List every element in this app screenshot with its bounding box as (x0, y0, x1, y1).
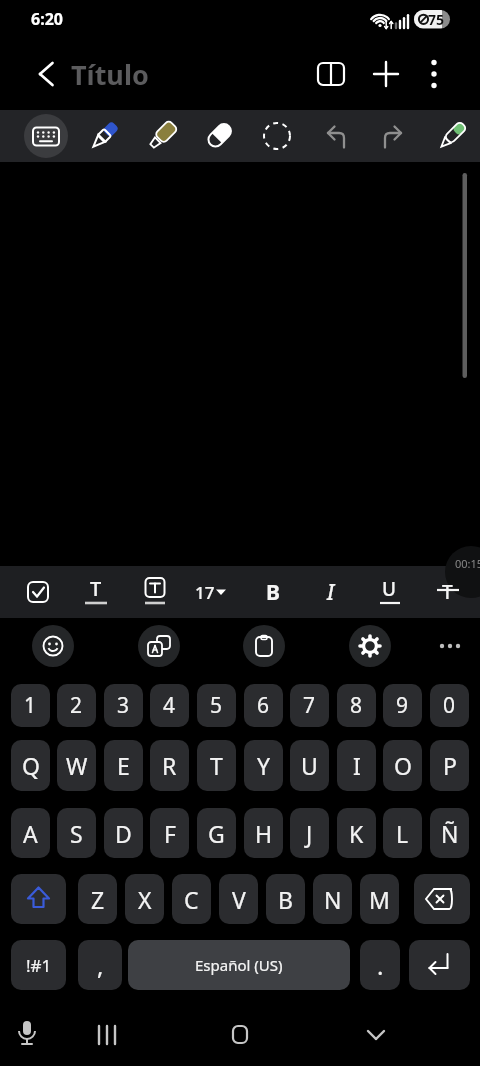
button[interactable]: , (78, 940, 122, 990)
button[interactable] (314, 114, 358, 158)
button[interactable]: 2 (57, 684, 96, 727)
button[interactable] (82, 114, 126, 158)
button[interactable] (409, 940, 470, 990)
button[interactable] (136, 623, 182, 669)
button[interactable] (212, 582, 232, 602)
button[interactable] (430, 114, 474, 158)
button[interactable] (414, 874, 470, 924)
button[interactable] (188, 570, 236, 614)
button[interactable]: 1 (11, 684, 50, 727)
button[interactable] (309, 570, 353, 614)
button[interactable]: J (290, 808, 329, 858)
button[interactable] (5, 1013, 49, 1057)
button[interactable]: Ñ (430, 808, 469, 858)
button[interactable] (347, 623, 393, 669)
button[interactable] (255, 114, 299, 158)
button[interactable] (354, 1013, 398, 1057)
button[interactable]: W (57, 740, 96, 791)
button[interactable]: A (11, 808, 50, 858)
staticText: 9 (396, 691, 409, 720)
staticText: 1 (24, 691, 37, 720)
staticText: U (382, 576, 397, 602)
staticText: , (97, 949, 104, 982)
button[interactable]: U (290, 740, 329, 791)
button[interactable]: 6 (244, 684, 283, 727)
button[interactable]: D (104, 808, 143, 858)
staticText: 7 (303, 691, 316, 720)
button[interactable] (30, 623, 76, 669)
button[interactable]: S (57, 808, 96, 858)
button[interactable]: R (150, 740, 189, 791)
button[interactable]: 4 (150, 684, 189, 727)
button[interactable]: X (125, 874, 164, 924)
button[interactable]: G (197, 808, 236, 858)
button[interactable] (74, 570, 118, 614)
staticText: S (70, 818, 83, 849)
button[interactable]: 9 (383, 684, 422, 727)
button[interactable]: K (337, 808, 376, 858)
button[interactable]: . (360, 940, 400, 990)
staticText: 00:15 (455, 556, 480, 571)
button[interactable] (367, 570, 411, 614)
button[interactable]: M (360, 874, 399, 924)
staticText: 17 (195, 581, 215, 604)
button[interactable] (371, 114, 415, 158)
button[interactable]: T (197, 740, 236, 791)
staticText: N (324, 884, 342, 915)
button[interactable]: !#1 (11, 940, 66, 990)
button[interactable]: E (104, 740, 143, 791)
button[interactable]: Y (244, 740, 283, 791)
staticText: 3 (117, 691, 130, 720)
button[interactable] (412, 52, 456, 96)
button[interactable] (85, 1013, 129, 1057)
button[interactable] (218, 1013, 262, 1057)
button[interactable]: Q (11, 740, 50, 791)
staticText: 5 (210, 691, 223, 720)
button[interactable]: O (383, 740, 422, 791)
staticText: 8 (350, 691, 363, 720)
button[interactable]: 3 (104, 684, 143, 727)
button[interactable]: P (430, 740, 469, 791)
button[interactable]: 5 (197, 684, 236, 727)
button[interactable] (16, 570, 60, 614)
staticText: Q (22, 750, 40, 781)
staticText: 6 (257, 691, 270, 720)
button[interactable] (197, 114, 241, 158)
button[interactable] (364, 52, 408, 96)
button[interactable] (251, 570, 295, 614)
button[interactable]: C (172, 874, 211, 924)
button[interactable] (133, 570, 177, 614)
button[interactable]: 8 (337, 684, 376, 727)
staticText: J (306, 818, 313, 849)
button[interactable]: F (150, 808, 189, 858)
staticText: Ñ (441, 818, 459, 849)
staticText: X (138, 884, 152, 915)
staticText: I (353, 750, 361, 781)
button[interactable]: B (266, 874, 305, 924)
staticText: 0 (443, 691, 456, 720)
staticText: B (266, 578, 280, 607)
button[interactable]: Z (78, 874, 117, 924)
button[interactable] (241, 623, 287, 669)
button[interactable]: 0 (430, 684, 469, 727)
staticText: L (396, 818, 409, 849)
button[interactable] (309, 52, 353, 96)
button[interactable]: L (383, 808, 422, 858)
staticText: 6:20 (31, 8, 63, 30)
button[interactable]: H (244, 808, 283, 858)
button[interactable]: V (219, 874, 258, 924)
staticText: E (117, 750, 130, 781)
staticText: D (115, 818, 132, 849)
staticText: T (90, 575, 102, 602)
staticText: A (23, 818, 38, 849)
button[interactable] (140, 114, 184, 158)
button[interactable] (23, 52, 67, 96)
button[interactable]: Español (US) (128, 940, 350, 990)
button[interactable]: I (337, 740, 376, 791)
button[interactable] (11, 874, 66, 924)
button[interactable]: 7 (290, 684, 329, 727)
button[interactable] (23, 113, 69, 159)
button[interactable] (430, 626, 470, 666)
button[interactable] (425, 570, 469, 614)
button[interactable]: N (313, 874, 352, 924)
